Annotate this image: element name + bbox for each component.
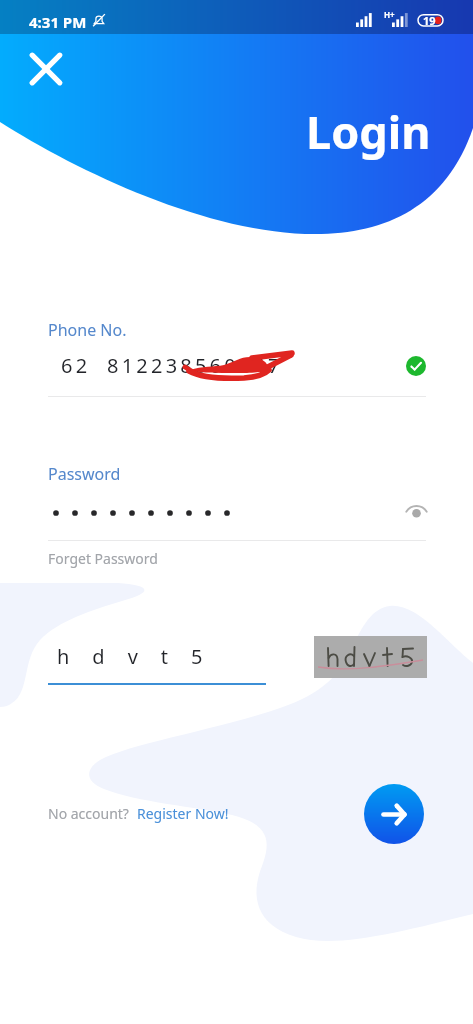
staticText: 4:31 PM bbox=[29, 12, 87, 32]
button[interactable]: Close bbox=[23, 46, 69, 92]
staticText: Password bbox=[48, 463, 121, 485]
staticText: 19 bbox=[423, 13, 436, 28]
staticText: No account? bbox=[48, 804, 129, 823]
staticText: Login bbox=[306, 101, 431, 162]
button[interactable]: Register Now! bbox=[137, 804, 229, 823]
button[interactable]: Show password bbox=[403, 496, 430, 523]
staticText: H+ bbox=[384, 9, 395, 20]
staticText: hdvt5 bbox=[57, 643, 226, 670]
button[interactable]: Phone number valid bbox=[406, 356, 426, 376]
button[interactable]: Refresh captcha bbox=[314, 636, 427, 678]
staticText: Phone No. bbox=[48, 319, 127, 341]
button[interactable]: Submit bbox=[364, 784, 424, 844]
staticText: 62 812238560847 bbox=[61, 352, 283, 379]
button[interactable]: Forget Password bbox=[48, 549, 158, 568]
